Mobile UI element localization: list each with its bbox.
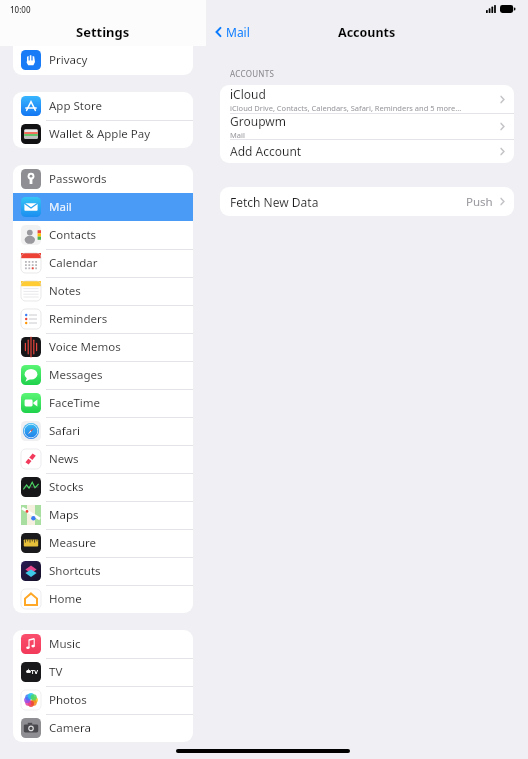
button[interactable]: Mail <box>215 24 250 40</box>
button[interactable]: Mail <box>13 193 193 221</box>
button[interactable]: Measure <box>13 529 193 557</box>
button[interactable]: Photos <box>13 686 193 714</box>
staticText: Stocks <box>49 479 84 495</box>
staticText: Voice Memos <box>49 339 121 355</box>
staticText: Safari <box>49 423 80 439</box>
staticText: News <box>49 451 79 467</box>
button[interactable]: Calendar <box>13 249 193 277</box>
staticText: Mail <box>49 199 72 215</box>
button[interactable]: Contacts <box>13 221 193 249</box>
button[interactable]: Stocks <box>13 473 193 501</box>
button[interactable]: News <box>13 445 193 473</box>
staticText: Wallet & Apple Pay <box>49 126 151 142</box>
staticText: Home <box>49 591 82 607</box>
staticText: Mail <box>230 130 245 139</box>
staticText: 10:00 <box>10 4 31 15</box>
button[interactable]: Groupwm <box>220 113 514 139</box>
staticText: Messages <box>49 367 103 383</box>
button[interactable]: Reminders <box>13 305 193 333</box>
button[interactable]: FaceTime <box>13 389 193 417</box>
staticText: Passwords <box>49 171 107 187</box>
staticText: Calendar <box>49 255 98 271</box>
staticText: iCloud Drive, Contacts, Calendars, Safar… <box>230 103 462 113</box>
button[interactable]: Add Account <box>220 139 514 163</box>
button[interactable]: Safari <box>13 417 193 445</box>
button[interactable]: Maps <box>13 501 193 529</box>
button[interactable]: Messages <box>13 361 193 389</box>
button[interactable]: iCloud <box>220 85 514 113</box>
button[interactable]: Home <box>13 585 193 613</box>
staticText: ACCOUNTS <box>230 68 275 79</box>
staticText: TV <box>49 664 63 680</box>
button[interactable]: Voice Memos <box>13 333 193 361</box>
button[interactable]: Shortcuts <box>13 557 193 585</box>
staticText: Settings <box>76 23 130 41</box>
button[interactable]: Wallet & Apple Pay <box>13 120 193 148</box>
staticText: Reminders <box>49 311 108 327</box>
button[interactable]: Passwords <box>13 165 193 193</box>
button[interactable]: TV <box>13 658 193 686</box>
staticText: Notes <box>49 283 81 299</box>
staticText: Groupwm <box>230 113 286 129</box>
staticText: Privacy <box>49 52 88 68</box>
button[interactable]: Music <box>13 630 193 658</box>
staticText: Maps <box>49 507 79 523</box>
staticText: Shortcuts <box>49 563 101 579</box>
staticText: Fetch New Data <box>230 194 319 210</box>
staticText: Measure <box>49 535 96 551</box>
staticText: Mail <box>226 24 250 40</box>
staticText: Photos <box>49 692 87 708</box>
staticText: Push <box>466 194 493 210</box>
button[interactable]: Privacy <box>13 46 193 74</box>
staticText: iCloud <box>230 86 266 102</box>
staticText: FaceTime <box>49 395 101 411</box>
button[interactable]: Camera <box>13 714 193 742</box>
staticText: Camera <box>49 720 91 736</box>
button[interactable]: Fetch New Data <box>220 187 514 216</box>
button[interactable]: App Store <box>13 92 193 120</box>
staticText: Accounts <box>338 24 396 41</box>
staticText: Add Account <box>230 143 302 159</box>
staticText: App Store <box>49 98 102 114</box>
button[interactable]: Notes <box>13 277 193 305</box>
staticText: Music <box>49 636 81 652</box>
staticText: Contacts <box>49 227 97 243</box>
